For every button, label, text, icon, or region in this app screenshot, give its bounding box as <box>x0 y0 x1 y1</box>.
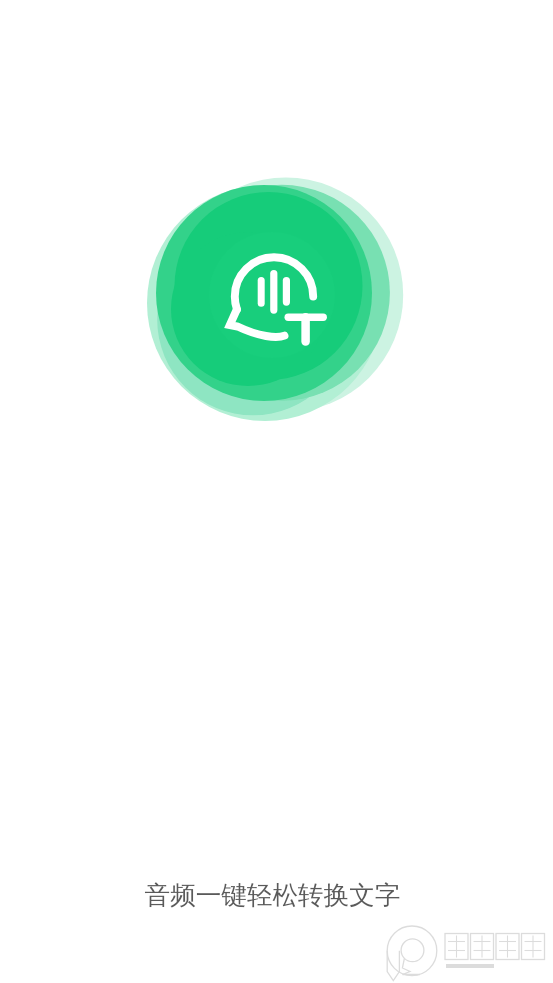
staticText: 音频一键轻松转换文字 <box>0 879 549 911</box>
other: App logo <box>0 0 553 983</box>
